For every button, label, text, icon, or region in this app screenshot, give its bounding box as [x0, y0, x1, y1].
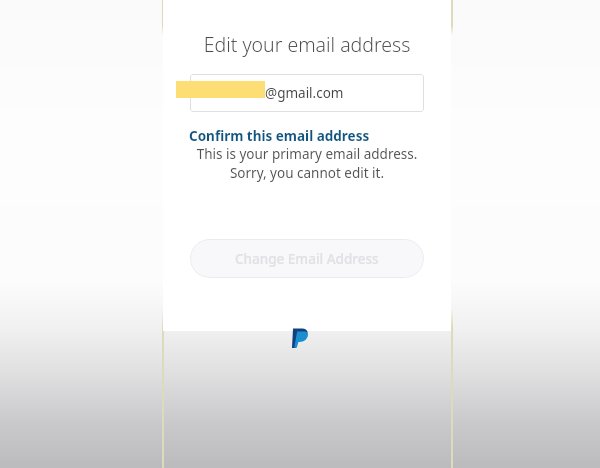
button[interactable]: @gmail.com — [190, 74, 424, 112]
staticText: Change Email Address — [235, 250, 379, 268]
staticText: @gmail.com — [265, 84, 344, 102]
staticText: This is your primary email address. — [163, 145, 451, 163]
other: PayPal — [292, 328, 309, 348]
staticText: Sorry, you cannot edit it. — [163, 164, 451, 182]
button[interactable]: Change Email Address — [190, 239, 424, 278]
staticText: Edit your email address — [163, 31, 451, 58]
button[interactable]: Confirm this email address — [189, 127, 370, 145]
